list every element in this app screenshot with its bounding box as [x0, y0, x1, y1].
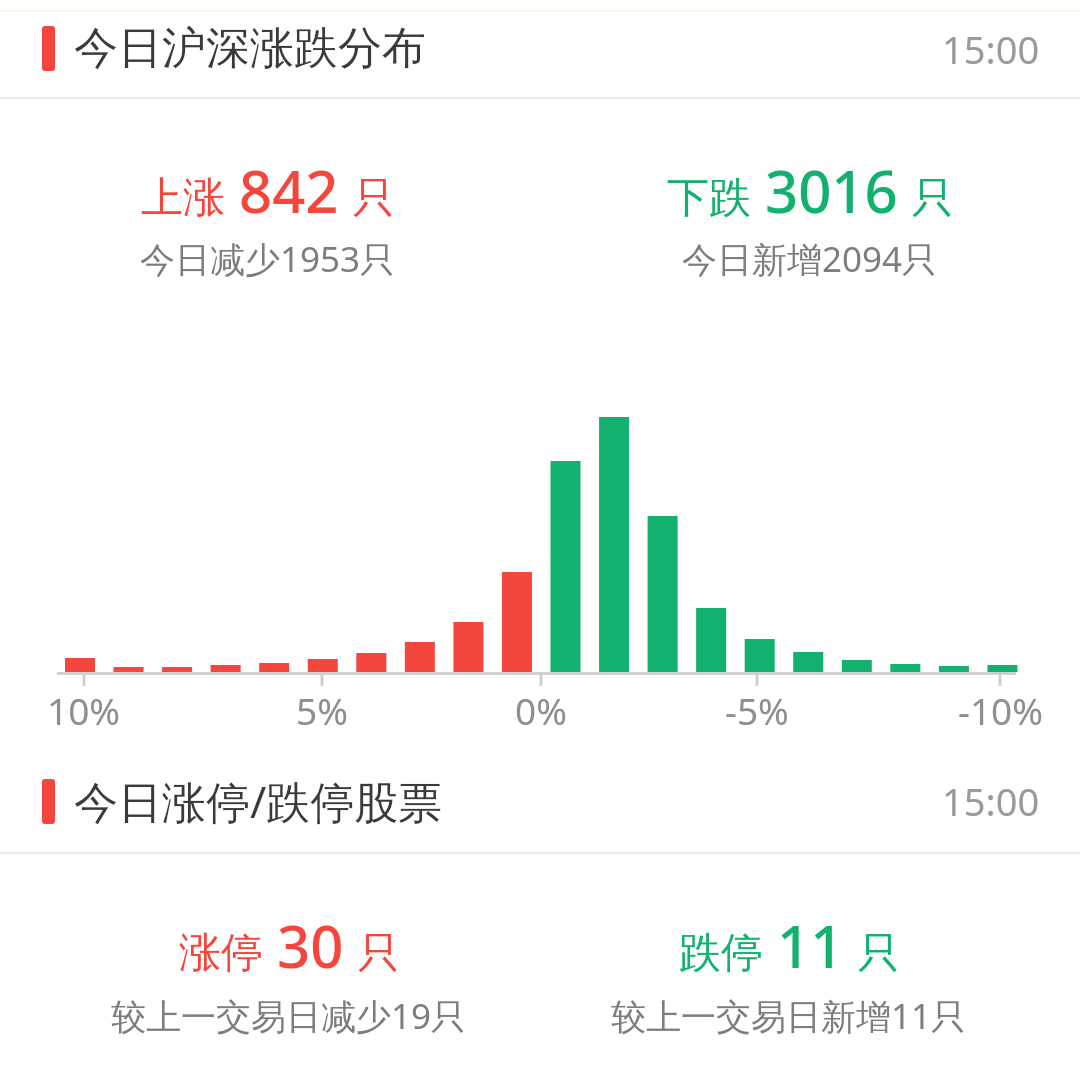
button[interactable]: 今日涨停/跌停股票 — [0, 750, 1080, 852]
staticText: 5% — [296, 685, 348, 735]
staticText: 今日沪深涨跌分布 — [74, 21, 426, 76]
staticText: 0% — [515, 685, 567, 735]
staticText: 跌停 — [679, 927, 763, 980]
staticText: -5% — [725, 685, 789, 735]
button[interactable]: 跌停 — [529, 900, 1049, 990]
staticText: 下跌 — [667, 172, 751, 225]
staticText: 11 — [777, 906, 844, 985]
staticText: 今日新增2094只 — [682, 235, 938, 283]
staticText: 15:00 — [942, 23, 1040, 75]
staticText: 只 — [353, 172, 395, 225]
staticText: 只 — [858, 927, 900, 980]
staticText: 10% — [47, 685, 121, 735]
button[interactable]: 今日沪深涨跌分布 — [0, 0, 1080, 97]
button[interactable]: 下跌 — [550, 145, 1070, 235]
button[interactable]: 上涨 — [8, 145, 528, 235]
staticText: 今日涨停/跌停股票 — [74, 771, 443, 831]
staticText: 只 — [358, 927, 400, 980]
staticText: 上涨 — [141, 172, 225, 225]
staticText: 较上一交易日减少19只 — [111, 992, 467, 1040]
staticText: 今日减少1953只 — [140, 235, 396, 283]
staticText: 842 — [239, 151, 339, 230]
staticText: -10% — [958, 685, 1043, 735]
staticText: 涨停 — [179, 927, 263, 980]
staticText: 30 — [277, 906, 344, 985]
staticText: 较上一交易日新增11只 — [611, 992, 967, 1040]
staticText: 3016 — [765, 151, 898, 230]
staticText: 15:00 — [942, 775, 1040, 827]
staticText: 只 — [912, 172, 954, 225]
button[interactable]: 涨停 — [29, 900, 549, 990]
